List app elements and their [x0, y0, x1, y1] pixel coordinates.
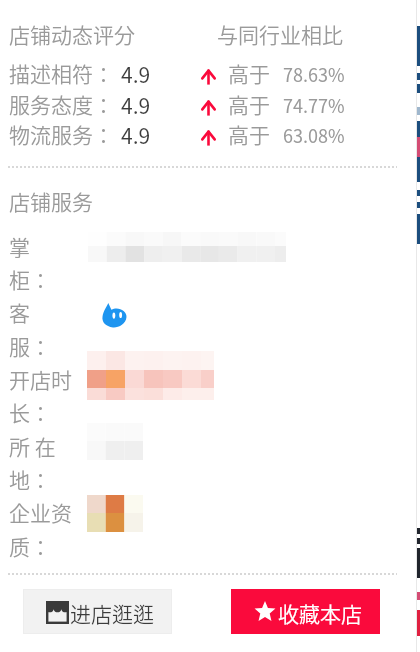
staticText: 地： [9, 464, 51, 494]
staticText: 78.63% [283, 61, 345, 87]
staticText: 4.9 [121, 120, 151, 150]
staticText: 企业资 [9, 497, 72, 527]
staticText: 63.08% [283, 122, 345, 148]
staticText: 收藏本店 [278, 598, 362, 628]
staticText: 掌 [9, 231, 30, 261]
staticText: 长： [9, 397, 51, 427]
button[interactable]: 收藏本店 [231, 589, 380, 634]
staticText: 所 在 [9, 431, 56, 461]
staticText: 描述相符： [9, 58, 114, 88]
staticText: 4.9 [121, 90, 151, 120]
staticText: 高于 [228, 89, 270, 119]
staticText: 店铺动态评分 [9, 19, 135, 49]
staticText: 4.9 [121, 59, 151, 89]
staticText: 柜： [9, 264, 51, 294]
staticText: 客 [9, 297, 30, 327]
staticText: 进店逛逛 [70, 598, 154, 628]
button[interactable]: 联系客服 [101, 302, 127, 328]
staticText: 与同行业相比 [217, 19, 343, 49]
staticText: 服： [9, 331, 51, 361]
staticText: 服务态度： [9, 89, 114, 119]
staticText: 高于 [228, 119, 270, 149]
staticText: 质： [9, 531, 51, 561]
staticText: 高于 [228, 58, 270, 88]
staticText: 店铺服务 [9, 186, 93, 216]
staticText: 物流服务： [9, 119, 114, 149]
button[interactable]: 进店逛逛 [23, 589, 172, 634]
staticText: 开店时 [9, 364, 72, 394]
staticText: 74.77% [283, 92, 345, 118]
